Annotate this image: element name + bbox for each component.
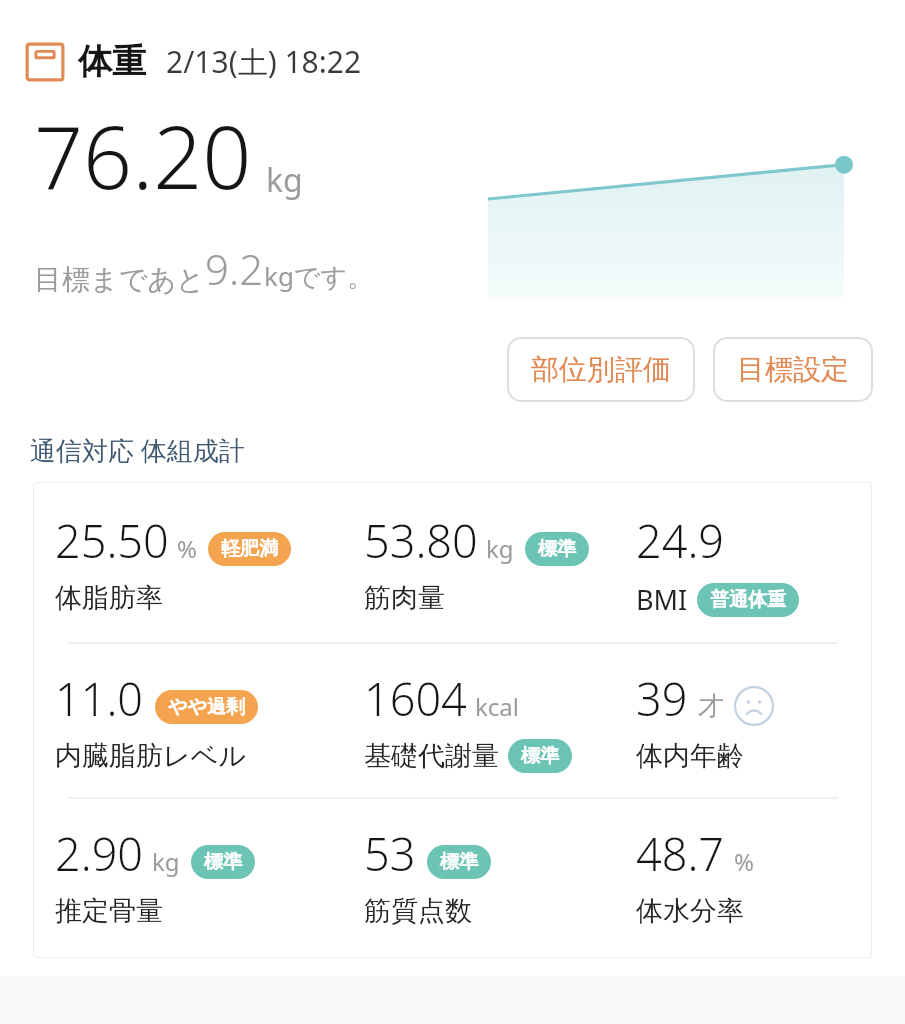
button[interactable]: 部位別評価 <box>507 337 695 402</box>
staticText: 標準 <box>440 850 478 874</box>
staticText: 24.9 <box>636 510 725 571</box>
staticText: BMI <box>636 581 688 618</box>
staticText: 2.90 <box>55 823 144 884</box>
staticText: 内臓脂肪レベル <box>55 739 246 773</box>
staticText: 9.2 <box>205 240 264 297</box>
staticText: 53 <box>364 823 416 884</box>
staticText: 才 <box>698 690 724 723</box>
staticText: 53.80 <box>364 510 478 571</box>
staticText: 39 <box>636 668 688 729</box>
staticText: 基礎代謝量 <box>364 739 499 773</box>
staticText: 体内年齢 <box>636 739 744 773</box>
staticText: kg <box>266 158 303 202</box>
staticText: 2/13(土) 18:22 <box>166 41 362 82</box>
staticText: 48.7 <box>636 823 725 884</box>
button[interactable]: 25.50 <box>33 482 872 958</box>
staticText: 軽肥満 <box>221 537 278 561</box>
staticText: 標準 <box>204 850 242 874</box>
staticText: 体重 <box>78 40 146 83</box>
staticText: 普通体重 <box>710 588 786 612</box>
staticText: 76.20 <box>34 97 252 214</box>
staticText: 標準 <box>521 744 559 768</box>
staticText: kcal <box>475 690 519 723</box>
staticText: 11.0 <box>55 668 144 729</box>
staticText: kgです。 <box>264 258 374 294</box>
staticText: 体脂肪率 <box>55 581 163 615</box>
staticText: 1604 <box>364 668 467 729</box>
staticText: 通信対応 体組成計 <box>30 432 245 468</box>
other: Body age status: sad <box>734 686 774 726</box>
staticText: 部位別評価 <box>531 352 671 387</box>
staticText: 目標設定 <box>737 352 849 387</box>
staticText: kg <box>486 532 514 565</box>
staticText: 推定骨量 <box>55 894 163 928</box>
staticText: 筋肉量 <box>364 581 445 615</box>
staticText: 体水分率 <box>636 894 744 928</box>
staticText: % <box>177 532 197 565</box>
staticText: % <box>734 845 754 878</box>
staticText: kg <box>152 845 180 878</box>
staticText: 標準 <box>538 537 576 561</box>
staticText: やや過剰 <box>168 695 245 719</box>
staticText: 25.50 <box>55 510 169 571</box>
staticText: 筋質点数 <box>364 894 472 928</box>
staticText: 目標まであと <box>34 262 205 297</box>
button[interactable]: 目標設定 <box>713 337 873 402</box>
